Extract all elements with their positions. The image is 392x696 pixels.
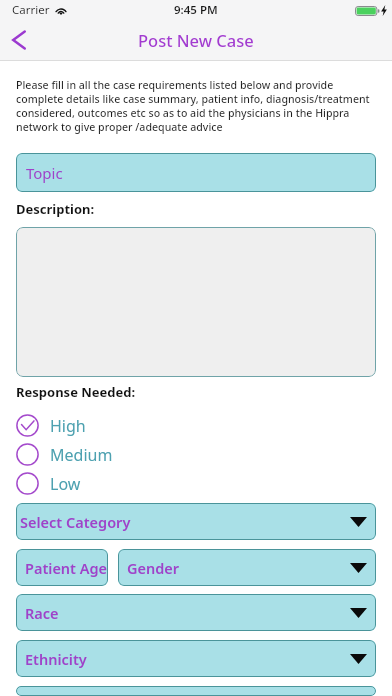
button[interactable]: Gender bbox=[118, 549, 376, 586]
button[interactable]: Patient Age bbox=[16, 549, 108, 586]
button[interactable]: Select Category bbox=[16, 503, 376, 540]
staticText: 9:45 PM bbox=[174, 2, 218, 18]
staticText: Post New Case bbox=[138, 29, 254, 51]
staticText: Carrier bbox=[12, 2, 50, 18]
staticText: Medium bbox=[50, 444, 113, 466]
staticText: High bbox=[50, 415, 86, 437]
button[interactable]: Back bbox=[0, 20, 38, 60]
staticText: Response Needed: bbox=[16, 383, 136, 401]
staticText: Ethnicity bbox=[25, 649, 87, 669]
staticText: Low bbox=[50, 473, 81, 495]
staticText: Select Category bbox=[20, 512, 131, 532]
staticText: Please fill in all the case requirements… bbox=[16, 78, 376, 134]
button[interactable]: Race bbox=[16, 594, 376, 631]
staticText: Topic bbox=[26, 163, 63, 183]
button[interactable]: Topic bbox=[16, 153, 376, 192]
staticText: Gender bbox=[127, 558, 180, 578]
button[interactable] bbox=[16, 686, 376, 696]
button[interactable]: Medium bbox=[16, 440, 376, 469]
staticText: Patient Age bbox=[25, 558, 108, 578]
button[interactable]: Ethnicity bbox=[16, 640, 376, 677]
button[interactable]: High bbox=[16, 411, 376, 440]
staticText: Description: bbox=[16, 200, 95, 218]
button[interactable]: Low bbox=[16, 469, 376, 498]
staticText: Race bbox=[25, 603, 59, 623]
button[interactable] bbox=[16, 227, 376, 377]
